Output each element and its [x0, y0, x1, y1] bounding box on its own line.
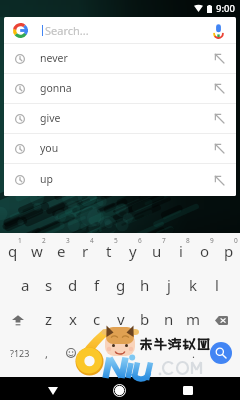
staticText: u — [152, 241, 162, 261]
button[interactable]: v — [107, 303, 131, 337]
staticText: v — [117, 309, 125, 329]
button[interactable]: 0 — [215, 236, 239, 270]
staticText: f — [94, 275, 100, 295]
button[interactable]: 3 — [47, 236, 71, 270]
button[interactable]: a — [11, 269, 35, 303]
staticText: b — [140, 309, 150, 329]
button[interactable]: 7 — [143, 236, 167, 270]
staticText: x — [69, 309, 77, 329]
staticText: 4 — [90, 236, 94, 245]
button[interactable]: j — [155, 269, 179, 303]
button[interactable]: gonna — [4, 74, 236, 103]
staticText: n — [164, 309, 174, 329]
button[interactable]: h — [131, 269, 155, 303]
staticText: 9 — [210, 236, 214, 245]
staticText: t — [106, 241, 112, 261]
staticText: k — [189, 275, 198, 295]
staticText: you — [40, 141, 59, 155]
staticText: w — [31, 241, 43, 261]
button[interactable]: c — [83, 303, 107, 337]
button[interactable]: x — [59, 303, 83, 337]
staticText: gonna — [40, 81, 72, 95]
button[interactable]: d — [59, 269, 83, 303]
staticText: 5 — [114, 236, 118, 245]
staticText: 8 — [186, 236, 190, 245]
staticText: . — [192, 346, 195, 361]
button[interactable]: Search... — [4, 17, 236, 43]
button[interactable]: Emoji — [60, 336, 82, 370]
button[interactable]: you — [4, 134, 236, 163]
other: Insert you — [215, 144, 224, 153]
button[interactable]: s — [35, 269, 59, 303]
staticText: z — [45, 309, 53, 329]
staticText: j — [167, 275, 171, 295]
button[interactable]: Recents — [177, 380, 198, 400]
button[interactable]: Hide keyboard — [42, 380, 63, 400]
button[interactable]: z — [35, 303, 59, 337]
staticText: 6 — [138, 236, 142, 245]
button[interactable]: n — [155, 303, 179, 337]
button[interactable]: ?123 — [6, 336, 34, 370]
staticText: 2 — [42, 236, 46, 245]
staticText: , — [45, 346, 48, 361]
button[interactable]: 6 — [119, 236, 143, 270]
button[interactable]: b — [131, 303, 155, 337]
staticText: d — [68, 275, 78, 295]
staticText: up — [40, 172, 53, 186]
staticText: q — [8, 241, 18, 261]
staticText: never — [40, 51, 68, 65]
staticText: e — [57, 241, 66, 261]
button[interactable]: l — [203, 269, 227, 303]
staticText: c — [93, 309, 101, 329]
button[interactable]: 2 — [23, 236, 47, 270]
button[interactable]: 4 — [71, 236, 95, 270]
button[interactable]: never — [4, 44, 236, 73]
button[interactable]: k — [179, 269, 203, 303]
button[interactable]: 8 — [167, 236, 191, 270]
button[interactable]: Home — [109, 380, 130, 400]
staticText: ?123 — [10, 347, 30, 359]
other: Insert up — [215, 176, 224, 185]
button[interactable]: 9 — [191, 236, 215, 270]
button[interactable]: Space — [84, 336, 184, 370]
staticText: s — [45, 275, 53, 295]
button[interactable]: g — [107, 269, 131, 303]
button[interactable]: Backspace — [208, 303, 234, 337]
other: Insert give — [215, 114, 224, 123]
staticText: 7 — [162, 236, 166, 245]
button[interactable]: 1 — [0, 236, 23, 270]
button[interactable]: Search — [210, 342, 232, 364]
staticText: i — [179, 241, 183, 261]
staticText: m — [186, 309, 201, 329]
staticText: y — [129, 241, 137, 261]
button[interactable]: 5 — [95, 236, 119, 270]
staticText: r — [82, 241, 89, 261]
staticText: h — [140, 275, 150, 295]
staticText: 3 — [66, 236, 70, 245]
button[interactable]: , — [37, 336, 55, 370]
other: Insert gonna — [215, 84, 224, 93]
staticText: 1 — [18, 236, 22, 245]
staticText: 0 — [234, 236, 238, 245]
staticText: l — [215, 275, 219, 295]
staticText: give — [40, 111, 61, 125]
button[interactable]: . — [184, 336, 202, 370]
staticText: g — [116, 275, 126, 295]
staticText: o — [200, 241, 210, 261]
button[interactable]: give — [4, 104, 236, 133]
staticText: Search... — [45, 23, 89, 38]
button[interactable]: m — [179, 303, 203, 337]
staticText: a — [21, 275, 30, 295]
staticText: p — [224, 241, 234, 261]
button[interactable]: f — [83, 269, 107, 303]
staticText: 9:00 — [216, 2, 235, 15]
other: Insert never — [215, 54, 224, 63]
button[interactable]: Shift — [6, 303, 30, 337]
button[interactable]: up — [4, 164, 236, 196]
